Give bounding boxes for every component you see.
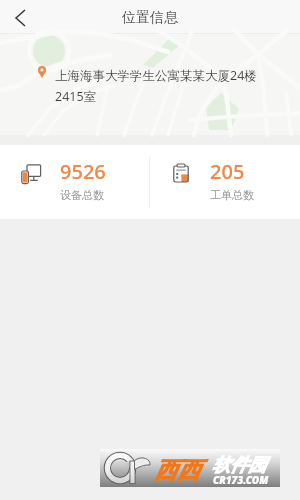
staticText: 软件园: [212, 454, 266, 477]
staticText: CR173.COM: [213, 473, 269, 487]
staticText: 设备总数: [60, 188, 104, 202]
staticText: 9526: [60, 158, 106, 185]
button[interactable]: Back: [0, 0, 38, 34]
staticText: 上海海事大学学生公寓某某大厦24楼: [55, 67, 257, 84]
button[interactable]: 9526: [0, 145, 149, 219]
staticText: 205: [210, 158, 245, 185]
button[interactable]: 205: [150, 145, 300, 219]
staticText: 工单总数: [210, 188, 254, 202]
staticText: 西西: [154, 456, 200, 485]
staticText: 2415室: [55, 88, 97, 105]
staticText: 位置信息: [122, 9, 178, 27]
